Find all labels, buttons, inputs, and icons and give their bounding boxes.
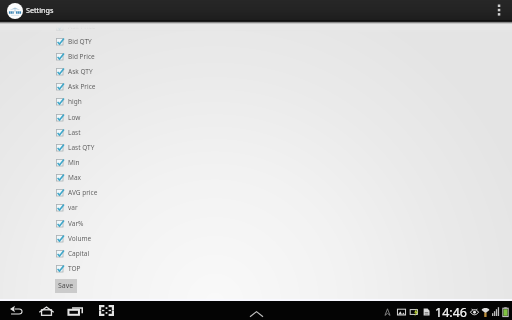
button[interactable]: Last: [0, 125, 512, 140]
button[interactable]: Bid Price: [0, 49, 512, 64]
staticText: Max: [68, 173, 81, 182]
staticText: Capital: [68, 249, 90, 258]
button[interactable]: Min: [0, 155, 512, 170]
button[interactable]: Var%: [0, 216, 512, 231]
button[interactable]: Ask QTY: [0, 64, 512, 79]
staticText: high: [68, 97, 82, 106]
staticText: Bid Price: [68, 52, 95, 61]
staticText: Low: [68, 113, 81, 122]
button[interactable]: Bid QTY: [0, 34, 512, 49]
staticText: Settings: [26, 5, 54, 15]
button[interactable]: Recent apps: [65, 301, 85, 320]
staticText: Last: [68, 128, 81, 137]
staticText: TOP: [68, 264, 81, 273]
staticText: Min: [68, 158, 80, 167]
staticText: Ask Price: [68, 82, 96, 91]
button[interactable]: Screenshot: [96, 301, 116, 320]
button[interactable]: AVG price: [0, 185, 512, 200]
staticText: Ask QTY: [68, 67, 93, 76]
button[interactable]: Max: [0, 170, 512, 185]
staticText: Last QTY: [68, 143, 95, 152]
button[interactable]: Back: [6, 301, 26, 320]
staticText: Ask Price: [68, 22, 96, 31]
button[interactable]: Ask Price: [0, 19, 512, 34]
button[interactable]: var: [0, 200, 512, 215]
button[interactable]: Last QTY: [0, 140, 512, 155]
button[interactable]: Show keyboard: [248, 306, 264, 320]
staticText: Volume: [68, 234, 92, 243]
staticText: var: [68, 203, 78, 212]
staticText: 14:46: [435, 304, 467, 320]
button[interactable]: high: [0, 94, 512, 109]
button[interactable]: Low: [0, 110, 512, 125]
button[interactable]: Ask Price: [0, 79, 512, 94]
staticText: AVG price: [68, 188, 98, 197]
button[interactable]: TOP: [0, 261, 512, 276]
staticText: Bid QTY: [68, 37, 92, 46]
staticText: Save: [58, 281, 74, 291]
button[interactable]: Volume: [0, 231, 512, 246]
button[interactable]: More options: [489, 0, 509, 20]
button[interactable]: Home: [36, 301, 56, 320]
button[interactable]: Capital: [0, 246, 512, 261]
button[interactable]: Save: [55, 279, 77, 293]
staticText: Var%: [68, 219, 84, 228]
